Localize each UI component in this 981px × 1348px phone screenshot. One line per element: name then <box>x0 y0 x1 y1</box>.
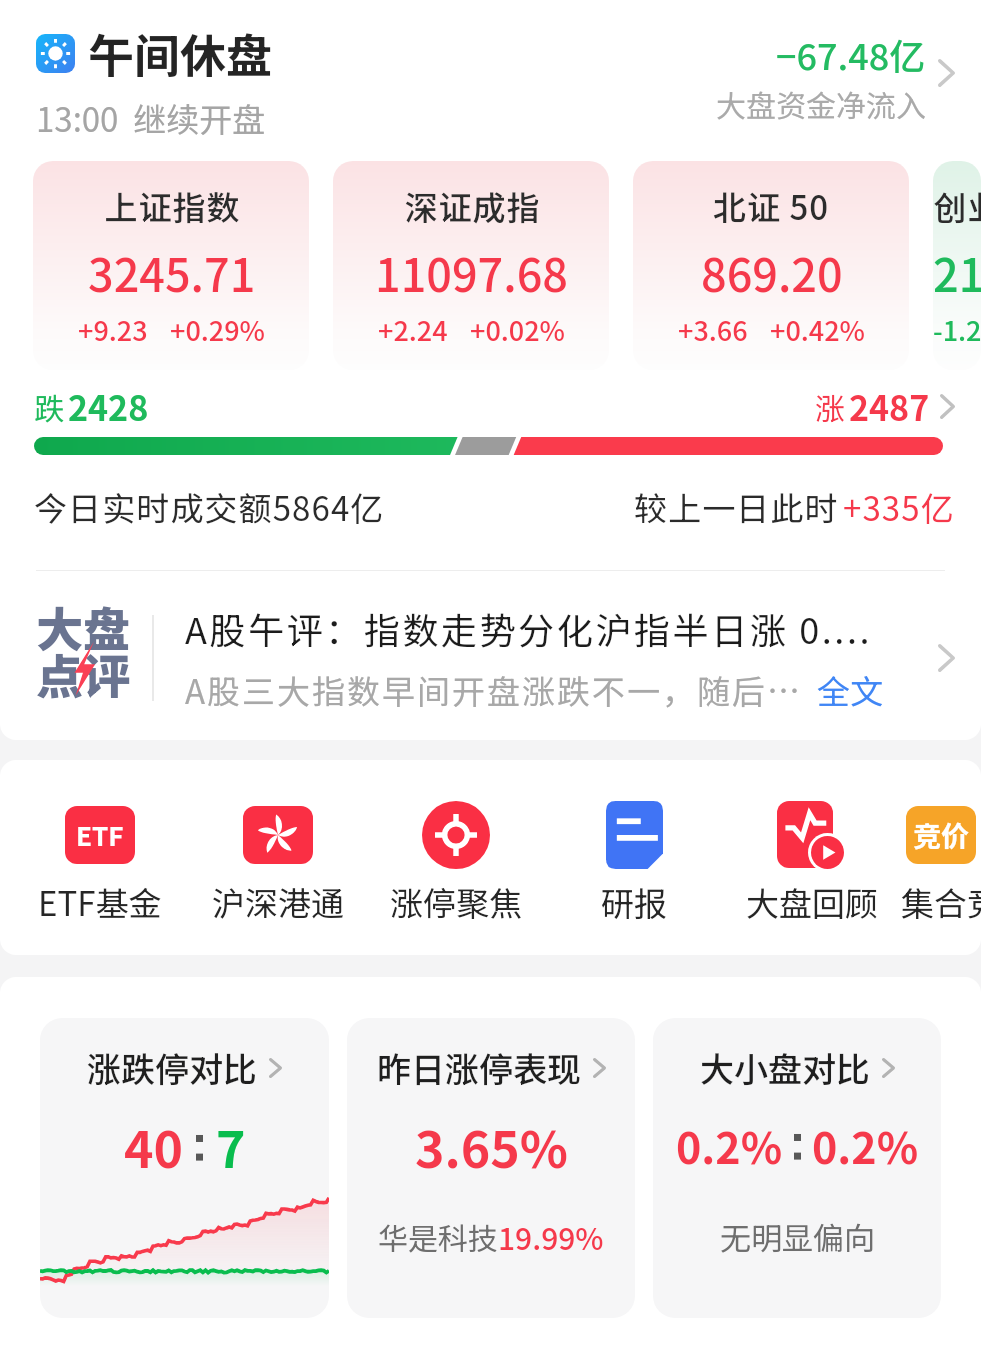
staticText: +3.66 <box>678 310 748 349</box>
button[interactable]: 大小盘对比 <box>653 1018 941 1318</box>
staticText: 今日实时成交额5864亿 <box>34 483 385 531</box>
staticText: +0.02% <box>470 310 565 349</box>
staticText: 2428 <box>68 382 149 431</box>
staticText: 研报 <box>601 878 667 926</box>
staticText: A股三大指数早间开盘涨跌不一，随后… <box>185 666 803 714</box>
staticText: 大盘资金净流入 <box>716 82 926 125</box>
staticText: 沪深港通 <box>212 878 344 926</box>
button[interactable]: 涨跌停对比 <box>40 1018 329 1318</box>
staticText: 大小盘对比 <box>700 1043 870 1092</box>
button[interactable]: 创业板指 <box>933 161 981 370</box>
button[interactable]: 涨停聚焦 <box>367 800 545 926</box>
staticText: 全文 <box>817 666 883 714</box>
staticText: 大盘 <box>36 592 130 660</box>
button[interactable]: 研报 <box>545 800 723 926</box>
staticText: 3245.71 <box>88 240 256 305</box>
staticText: ETF基金 <box>38 878 162 926</box>
staticText: 创业板指 <box>933 182 981 230</box>
staticText: 涨跌停对比 <box>87 1043 257 1092</box>
staticText: 点评 <box>36 639 130 707</box>
staticText: −67.48亿 <box>776 28 926 80</box>
staticText: 集合竞价 <box>901 878 981 926</box>
staticText: 11097.68 <box>375 240 568 305</box>
staticText: -1.24 <box>933 310 981 349</box>
staticText: 涨 <box>815 385 845 428</box>
button[interactable]: −67.48亿 <box>716 20 955 125</box>
staticText: 2487 <box>849 382 930 431</box>
staticText: 较上一日此时 <box>634 483 839 531</box>
staticText: +9.23 <box>78 310 148 349</box>
staticText: 深证成指 <box>404 182 540 230</box>
staticText: 竞价 <box>913 815 970 856</box>
staticText: 0.2% <box>812 1114 919 1176</box>
staticText: A股午评：指数走势分化沪指半日涨 0.... <box>185 602 873 654</box>
button[interactable]: 竞价 <box>901 800 981 926</box>
staticText: ETF <box>76 816 124 854</box>
staticText: +0.42% <box>770 310 865 349</box>
staticText: 华是科技 <box>378 1215 498 1258</box>
staticText: +2.24 <box>378 310 448 349</box>
button[interactable]: 昨日涨停表现 <box>347 1018 635 1318</box>
staticText: 上证指数 <box>104 182 240 230</box>
staticText: 7 <box>216 1110 246 1182</box>
button[interactable]: 深证成指 <box>333 161 609 370</box>
staticText: +0.29% <box>170 310 265 349</box>
button[interactable]: 北证 50 <box>633 161 909 370</box>
button[interactable]: 大盘回顾 <box>723 800 901 926</box>
staticText: 北证 50 <box>713 182 830 230</box>
staticText: 昨日涨停表现 <box>377 1043 581 1092</box>
staticText: 0.2% <box>676 1114 783 1176</box>
button[interactable]: 上证指数 <box>33 161 309 370</box>
staticText: 大盘回顾 <box>746 878 878 926</box>
button[interactable]: 沪深港通 <box>189 800 367 926</box>
staticText: +335亿 <box>843 483 955 531</box>
staticText: 跌 <box>34 385 64 428</box>
staticText: 3.65% <box>415 1110 568 1182</box>
staticText: 869.20 <box>701 240 843 305</box>
staticText: 无明显偏向 <box>720 1214 875 1259</box>
button[interactable]: 大盘 <box>0 571 981 740</box>
staticText: 13:00 继续开盘 <box>36 94 266 142</box>
button[interactable]: ETF <box>11 800 189 926</box>
staticText: 2142.01 <box>933 240 981 305</box>
staticText: 午间休盘 <box>88 20 272 87</box>
staticText: 40 <box>124 1110 183 1182</box>
staticText: 涨停聚焦 <box>390 878 522 926</box>
staticText: 19.99% <box>498 1215 604 1258</box>
